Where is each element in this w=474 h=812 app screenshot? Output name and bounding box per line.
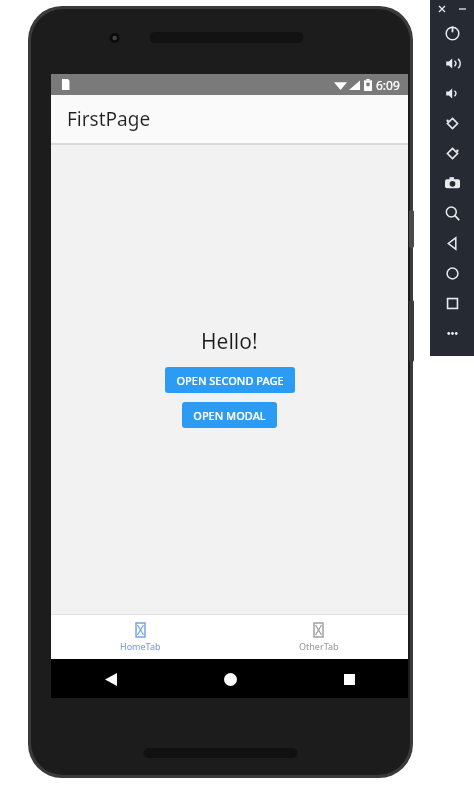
button[interactable]: Rotate left (430, 108, 474, 138)
staticText: HomeTab (120, 640, 161, 652)
button[interactable]: Back (430, 228, 474, 258)
button[interactable]: Take screenshot (430, 168, 474, 198)
button[interactable]: Power (430, 18, 474, 48)
button[interactable]: OtherTab (229, 615, 408, 659)
button[interactable]: Volume up (430, 48, 474, 78)
staticText: FirstPage (67, 106, 151, 132)
button[interactable]: Overview (430, 288, 474, 318)
staticText: 6:09 (376, 77, 400, 93)
button[interactable]: HomeTab (51, 615, 229, 659)
button[interactable]: Volume down (430, 78, 474, 108)
button[interactable]: Rotate right (430, 138, 474, 168)
button[interactable]: OPEN MODAL (182, 402, 277, 428)
button[interactable]: Recents (332, 662, 366, 696)
button[interactable]: Home (430, 258, 474, 288)
staticText: Hello! (201, 327, 258, 356)
button[interactable]: Zoom (430, 198, 474, 228)
button[interactable]: OPEN SECOND PAGE (165, 367, 295, 393)
staticText: OPEN MODAL (193, 408, 266, 423)
button[interactable]: Close (435, 2, 449, 16)
button[interactable]: Minimize (455, 2, 469, 16)
button[interactable]: Home (213, 662, 247, 696)
staticText: OPEN SECOND PAGE (176, 373, 284, 388)
staticText: OtherTab (299, 640, 339, 652)
button[interactable]: More (430, 318, 474, 348)
button[interactable]: Back (94, 662, 128, 696)
